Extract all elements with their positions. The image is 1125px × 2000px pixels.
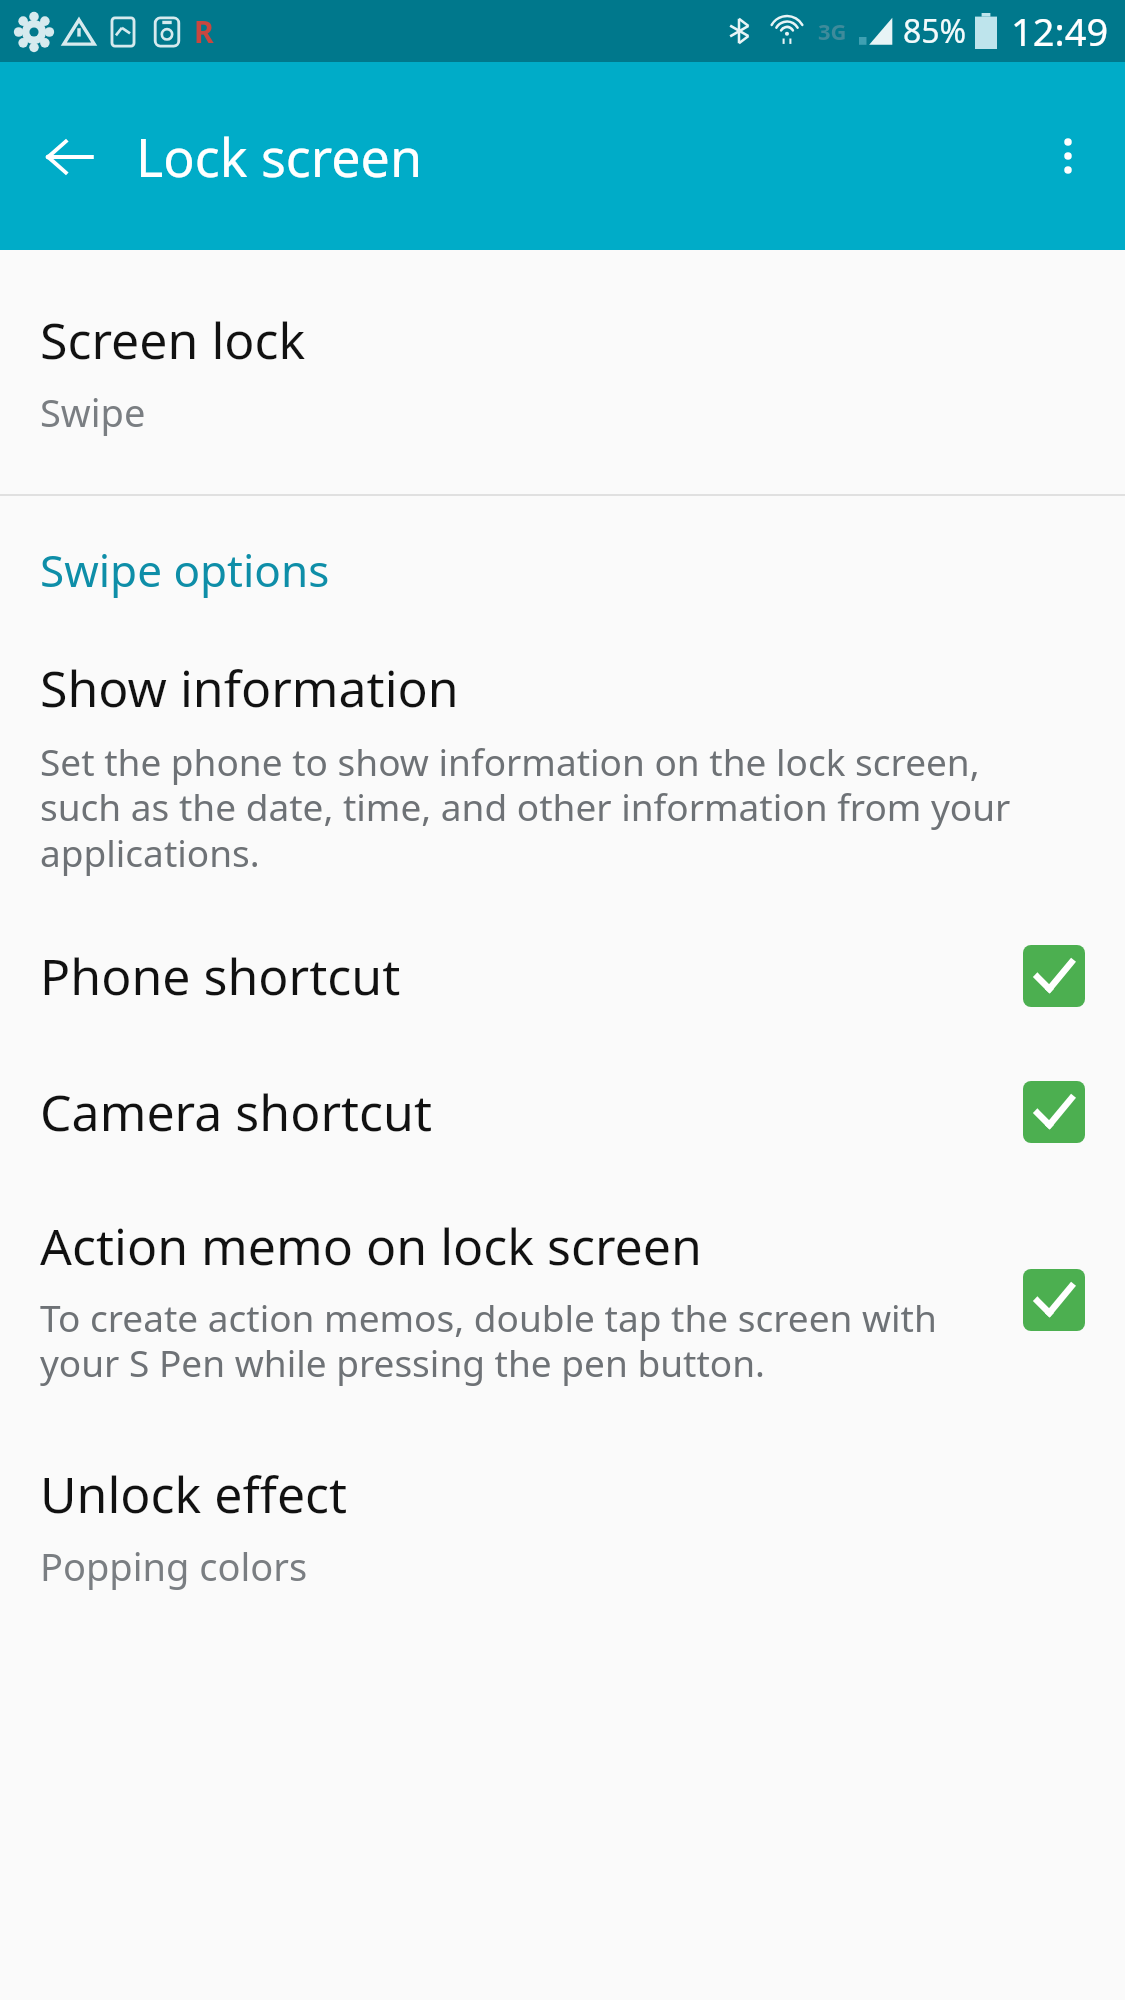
staticText: Screen lock <box>40 306 306 374</box>
staticText: Unlock effect <box>40 1460 348 1528</box>
staticText: Swipe <box>40 386 146 438</box>
button[interactable]: Checkbox, checked <box>1023 1081 1085 1143</box>
staticText: To create action memos, double tap the s… <box>40 1292 999 1388</box>
staticText: Set the phone to show information on the… <box>40 736 1035 878</box>
staticText: R <box>194 11 214 52</box>
button[interactable]: Unlock effect <box>0 1416 1125 1622</box>
staticText: Popping colors <box>40 1540 308 1592</box>
button[interactable]: Screen lock <box>0 250 1125 494</box>
button[interactable]: More options <box>1033 121 1103 191</box>
button[interactable]: Camera shortcut <box>0 1044 1125 1180</box>
button[interactable]: Action memo on lock screen <box>0 1180 1125 1416</box>
staticText: 3G <box>818 16 847 46</box>
button[interactable]: Checkbox, checked <box>1023 1269 1085 1331</box>
button[interactable]: Checkbox, checked <box>1023 945 1085 1007</box>
staticText: 12:49 <box>1011 5 1109 57</box>
button[interactable]: Show information <box>0 618 1125 908</box>
staticText: Camera shortcut <box>40 1078 1023 1146</box>
staticText: Phone shortcut <box>40 942 1023 1010</box>
button[interactable]: Back <box>40 127 100 187</box>
staticText: Show information <box>40 654 459 722</box>
button[interactable]: Phone shortcut <box>0 908 1125 1044</box>
staticText: Swipe options <box>40 540 330 600</box>
staticText: 85% <box>903 9 967 53</box>
staticText: Lock screen <box>136 121 423 192</box>
staticText: Action memo on lock screen <box>40 1212 702 1280</box>
